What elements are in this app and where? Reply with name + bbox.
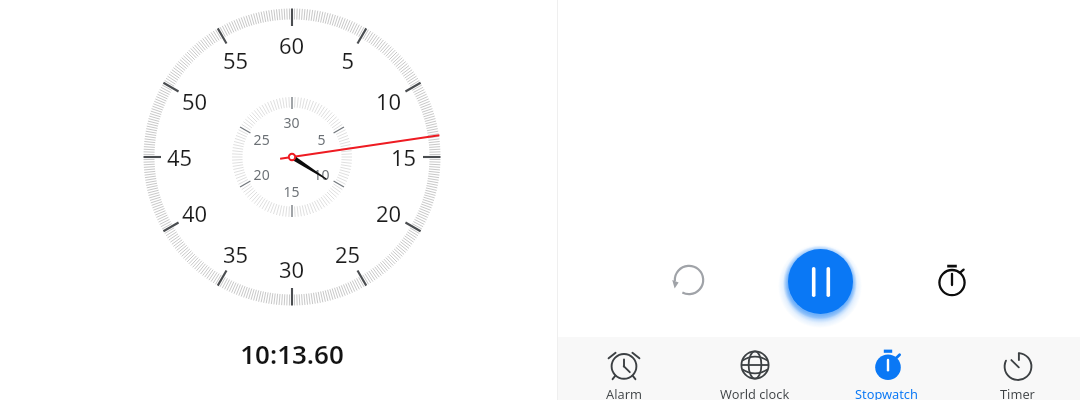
staticText: Timer: [1000, 385, 1035, 400]
button[interactable]: Timer: [949, 337, 1080, 400]
button[interactable]: Reset: [663, 254, 715, 306]
button[interactable]: Lap: [926, 255, 978, 307]
staticText: World clock: [720, 385, 790, 400]
button[interactable]: Alarm: [558, 337, 688, 400]
button[interactable]: Stopwatch: [818, 337, 949, 400]
staticText: Alarm: [606, 385, 642, 400]
button[interactable]: World clock: [688, 337, 818, 400]
staticText: 10:13.60: [142, 336, 442, 371]
button[interactable]: Pause: [788, 249, 853, 314]
staticText: Stopwatch: [855, 385, 918, 400]
